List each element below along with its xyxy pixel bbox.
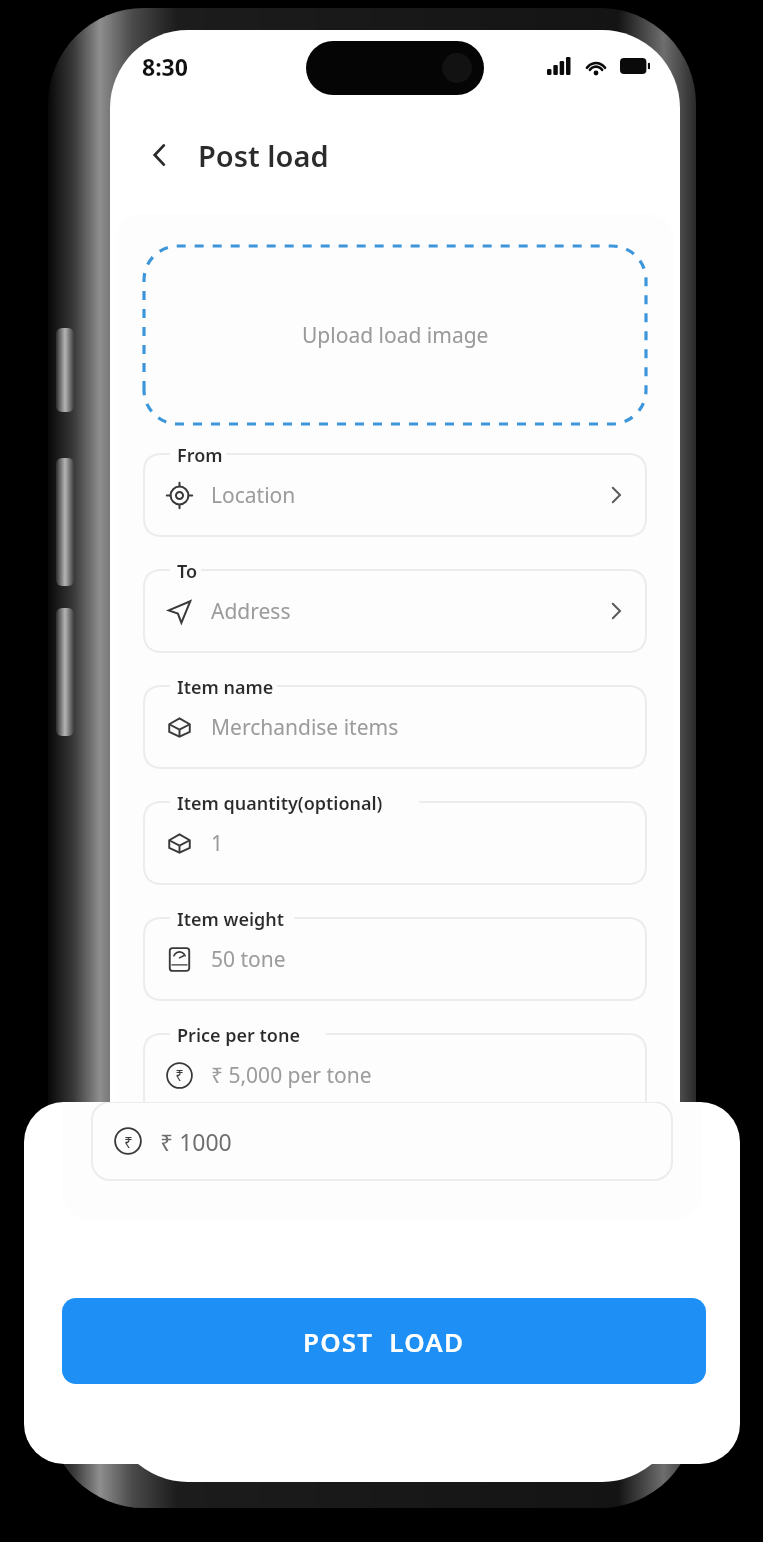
staticText: Item quantity(optional) — [177, 791, 383, 816]
staticText: ₹ — [175, 1065, 184, 1086]
staticText: ₹ 1000 — [160, 1126, 232, 1157]
button[interactable]: POST LOAD — [62, 1298, 706, 1384]
staticText: ₹ 1000 — [211, 1177, 626, 1206]
button[interactable]: To — [144, 570, 646, 652]
button[interactable]: Item weight — [144, 918, 646, 1000]
staticText: POST LOAD — [303, 1324, 465, 1359]
staticText: Address — [211, 597, 606, 626]
button[interactable]: Price per tone — [144, 1034, 646, 1116]
staticText: 1 — [211, 829, 626, 858]
staticText: Item weight — [177, 907, 285, 932]
staticText: ₹ — [124, 1131, 133, 1152]
button[interactable]: Back — [136, 131, 184, 179]
staticText: Post load — [198, 136, 329, 175]
staticText: Price per tone — [177, 1023, 300, 1048]
staticText: ₹ 5,000 per tone — [211, 1061, 626, 1090]
staticText: Merchandise items — [211, 713, 626, 742]
staticText: From — [177, 443, 223, 468]
staticText: 50 tone — [211, 945, 626, 974]
button[interactable]: From — [144, 454, 646, 536]
button[interactable]: ₹ — [92, 1102, 672, 1180]
button[interactable]: Upload load image — [144, 246, 646, 424]
staticText: 8:30 — [142, 51, 188, 82]
staticText: Item name — [177, 675, 274, 700]
button[interactable]: Item quantity(optional) — [144, 802, 646, 884]
staticText: To — [177, 559, 198, 584]
staticText: Upload load image — [302, 321, 489, 350]
button[interactable]: Item name — [144, 686, 646, 768]
staticText: Advance — [177, 1139, 252, 1164]
button[interactable]: Advance — [144, 1150, 646, 1232]
staticText: Location — [211, 481, 606, 510]
